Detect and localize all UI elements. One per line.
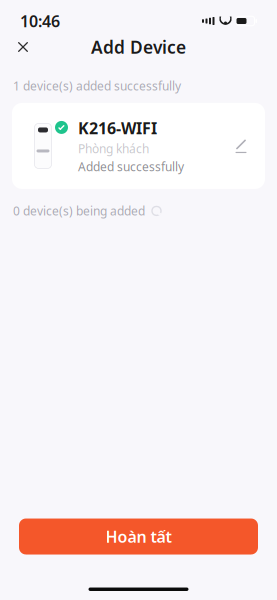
staticText: Hoàn tất [105, 526, 171, 547]
staticText: 0 device(s) being added [13, 203, 145, 219]
staticText: Add Device [91, 35, 186, 58]
button[interactable]: K216-WIFI [12, 103, 265, 189]
staticText: Phòng khách [78, 141, 149, 156]
staticText: 10:46 [20, 10, 60, 32]
button[interactable]: Hoàn tất [19, 518, 258, 554]
staticText: Added successfully [78, 159, 184, 174]
button[interactable]: Close [8, 32, 38, 62]
staticText: 1 device(s) added successfully [13, 78, 181, 94]
staticText: K216-WIFI [78, 117, 157, 139]
